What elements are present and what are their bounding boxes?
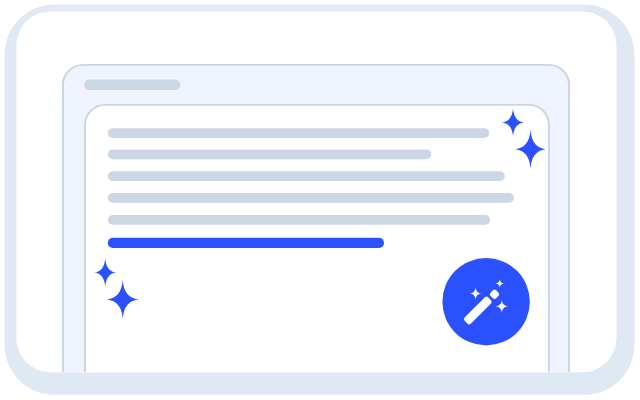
button[interactable]: Magic wand bbox=[441, 257, 527, 343]
